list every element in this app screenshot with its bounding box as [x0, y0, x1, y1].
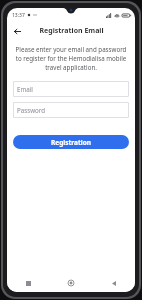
button[interactable]: Registration [13, 135, 129, 149]
button[interactable]: Password [13, 102, 129, 118]
staticText: 13:37 [12, 12, 25, 19]
button[interactable]: Back [11, 25, 23, 37]
button[interactable]: Email [13, 81, 129, 97]
staticText: Please enter your email and password to … [15, 45, 127, 72]
staticText: Registration [51, 138, 92, 147]
staticText: Registration Email [39, 26, 104, 36]
button[interactable]: Home [49, 274, 92, 292]
button[interactable]: Recent apps [7, 274, 49, 292]
staticText: Email [17, 85, 33, 93]
staticText: Password [17, 106, 45, 114]
button[interactable]: Back [92, 274, 135, 292]
